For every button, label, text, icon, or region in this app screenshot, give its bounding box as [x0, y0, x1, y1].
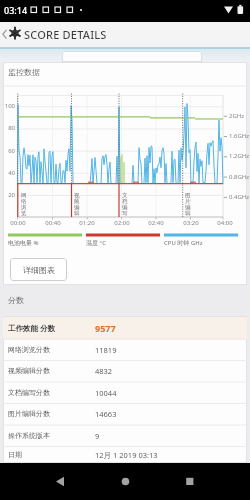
button[interactable]: [0, 22, 250, 47]
staticText: 图 片 编 辑: [185, 192, 191, 217]
button[interactable]: [3, 447, 247, 469]
button[interactable]: [3, 425, 247, 447]
staticText: 文 档 编 写: [122, 192, 128, 217]
staticText: 9577: [95, 322, 116, 334]
staticText: 10044: [95, 388, 117, 398]
button[interactable]: [109, 466, 141, 498]
staticText: 01:20: [79, 219, 95, 227]
staticText: 工作效能 分数: [8, 323, 55, 333]
staticText: 03:20: [183, 219, 199, 227]
staticText: 电池电量 %: [8, 239, 39, 247]
staticText: CPU 时钟 GHz: [164, 239, 203, 247]
button[interactable]: [44, 466, 76, 498]
staticText: SCORE DETAILS: [24, 27, 107, 42]
staticText: 14663: [95, 409, 117, 419]
staticText: 9: [95, 431, 100, 441]
staticText: 视频编辑分数: [8, 366, 50, 375]
staticText: 100: [4, 102, 15, 110]
staticText: 04:00: [217, 219, 233, 227]
staticText: 02:40: [148, 219, 164, 227]
staticText: 40: [8, 169, 15, 177]
staticText: 1.2GHz: [229, 152, 250, 160]
staticText: 详细图表: [23, 265, 55, 275]
staticText: 03:14: [4, 4, 28, 16]
button[interactable]: [3, 404, 247, 426]
staticText: 0.4GHz: [229, 193, 250, 201]
staticText: 监控数据: [8, 67, 40, 77]
staticText: 11819: [95, 345, 117, 355]
staticText: 00:40: [45, 219, 61, 227]
button[interactable]: [3, 382, 247, 404]
button[interactable]: [3, 317, 247, 340]
button[interactable]: [3, 361, 247, 383]
staticText: 20: [8, 191, 15, 199]
staticText: 网 络 浏 览: [21, 192, 27, 217]
button[interactable]: [62, 51, 202, 62]
staticText: 操作系统版本: [8, 431, 50, 440]
staticText: 0.8GHz: [229, 173, 250, 181]
staticText: 温度 °C: [86, 239, 106, 247]
staticText: 02:00: [114, 219, 130, 227]
staticText: 80: [8, 124, 15, 132]
staticText: 2GHz: [229, 112, 245, 120]
staticText: 1.6GHz: [229, 132, 250, 140]
button[interactable]: [3, 339, 247, 361]
staticText: 00:00: [10, 219, 26, 227]
staticText: 分数: [8, 295, 24, 305]
staticText: 网络浏览分数: [8, 345, 50, 354]
staticText: 4832: [95, 366, 113, 376]
button[interactable]: 详细图表: [10, 258, 67, 281]
staticText: 图片编辑分数: [8, 409, 50, 418]
staticText: 文档编写分数: [8, 388, 50, 397]
button[interactable]: [173, 466, 205, 498]
staticText: 12月 1 2019 03:13: [95, 450, 158, 460]
staticText: 视 频 编 辑: [74, 192, 80, 217]
staticText: 60: [8, 147, 15, 155]
staticText: 日期: [8, 450, 22, 459]
